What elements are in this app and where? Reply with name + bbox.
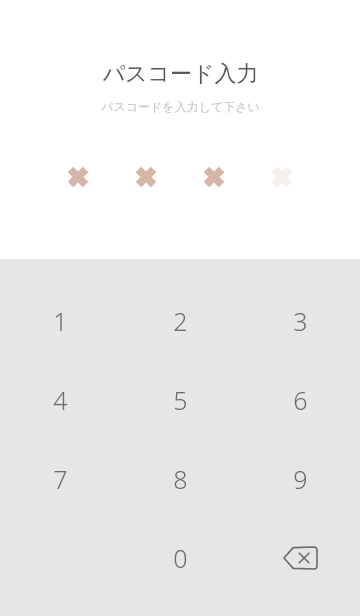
button[interactable]: 8: [120, 439, 240, 518]
staticText: 3: [293, 304, 308, 338]
staticText: パスコード入力: [102, 60, 259, 88]
button[interactable]: 2: [120, 281, 240, 360]
button[interactable]: 5: [120, 360, 240, 439]
staticText: 2: [173, 304, 188, 338]
button[interactable]: 3: [240, 281, 360, 360]
staticText: 4: [53, 383, 68, 417]
staticText: 9: [293, 462, 308, 496]
staticText: 7: [53, 462, 68, 496]
staticText: 5: [173, 383, 188, 417]
staticText: 6: [293, 383, 308, 417]
button[interactable]: Delete: [240, 518, 360, 597]
button[interactable]: 4: [0, 360, 120, 439]
staticText: パスコードを入力して下さい: [101, 99, 260, 114]
staticText: 1: [53, 304, 68, 338]
button[interactable]: 6: [240, 360, 360, 439]
button[interactable]: 0: [120, 518, 240, 597]
staticText: 8: [173, 462, 188, 496]
button[interactable]: 9: [240, 439, 360, 518]
button[interactable]: 7: [0, 439, 120, 518]
button[interactable]: 1: [0, 281, 120, 360]
staticText: 0: [173, 541, 188, 575]
